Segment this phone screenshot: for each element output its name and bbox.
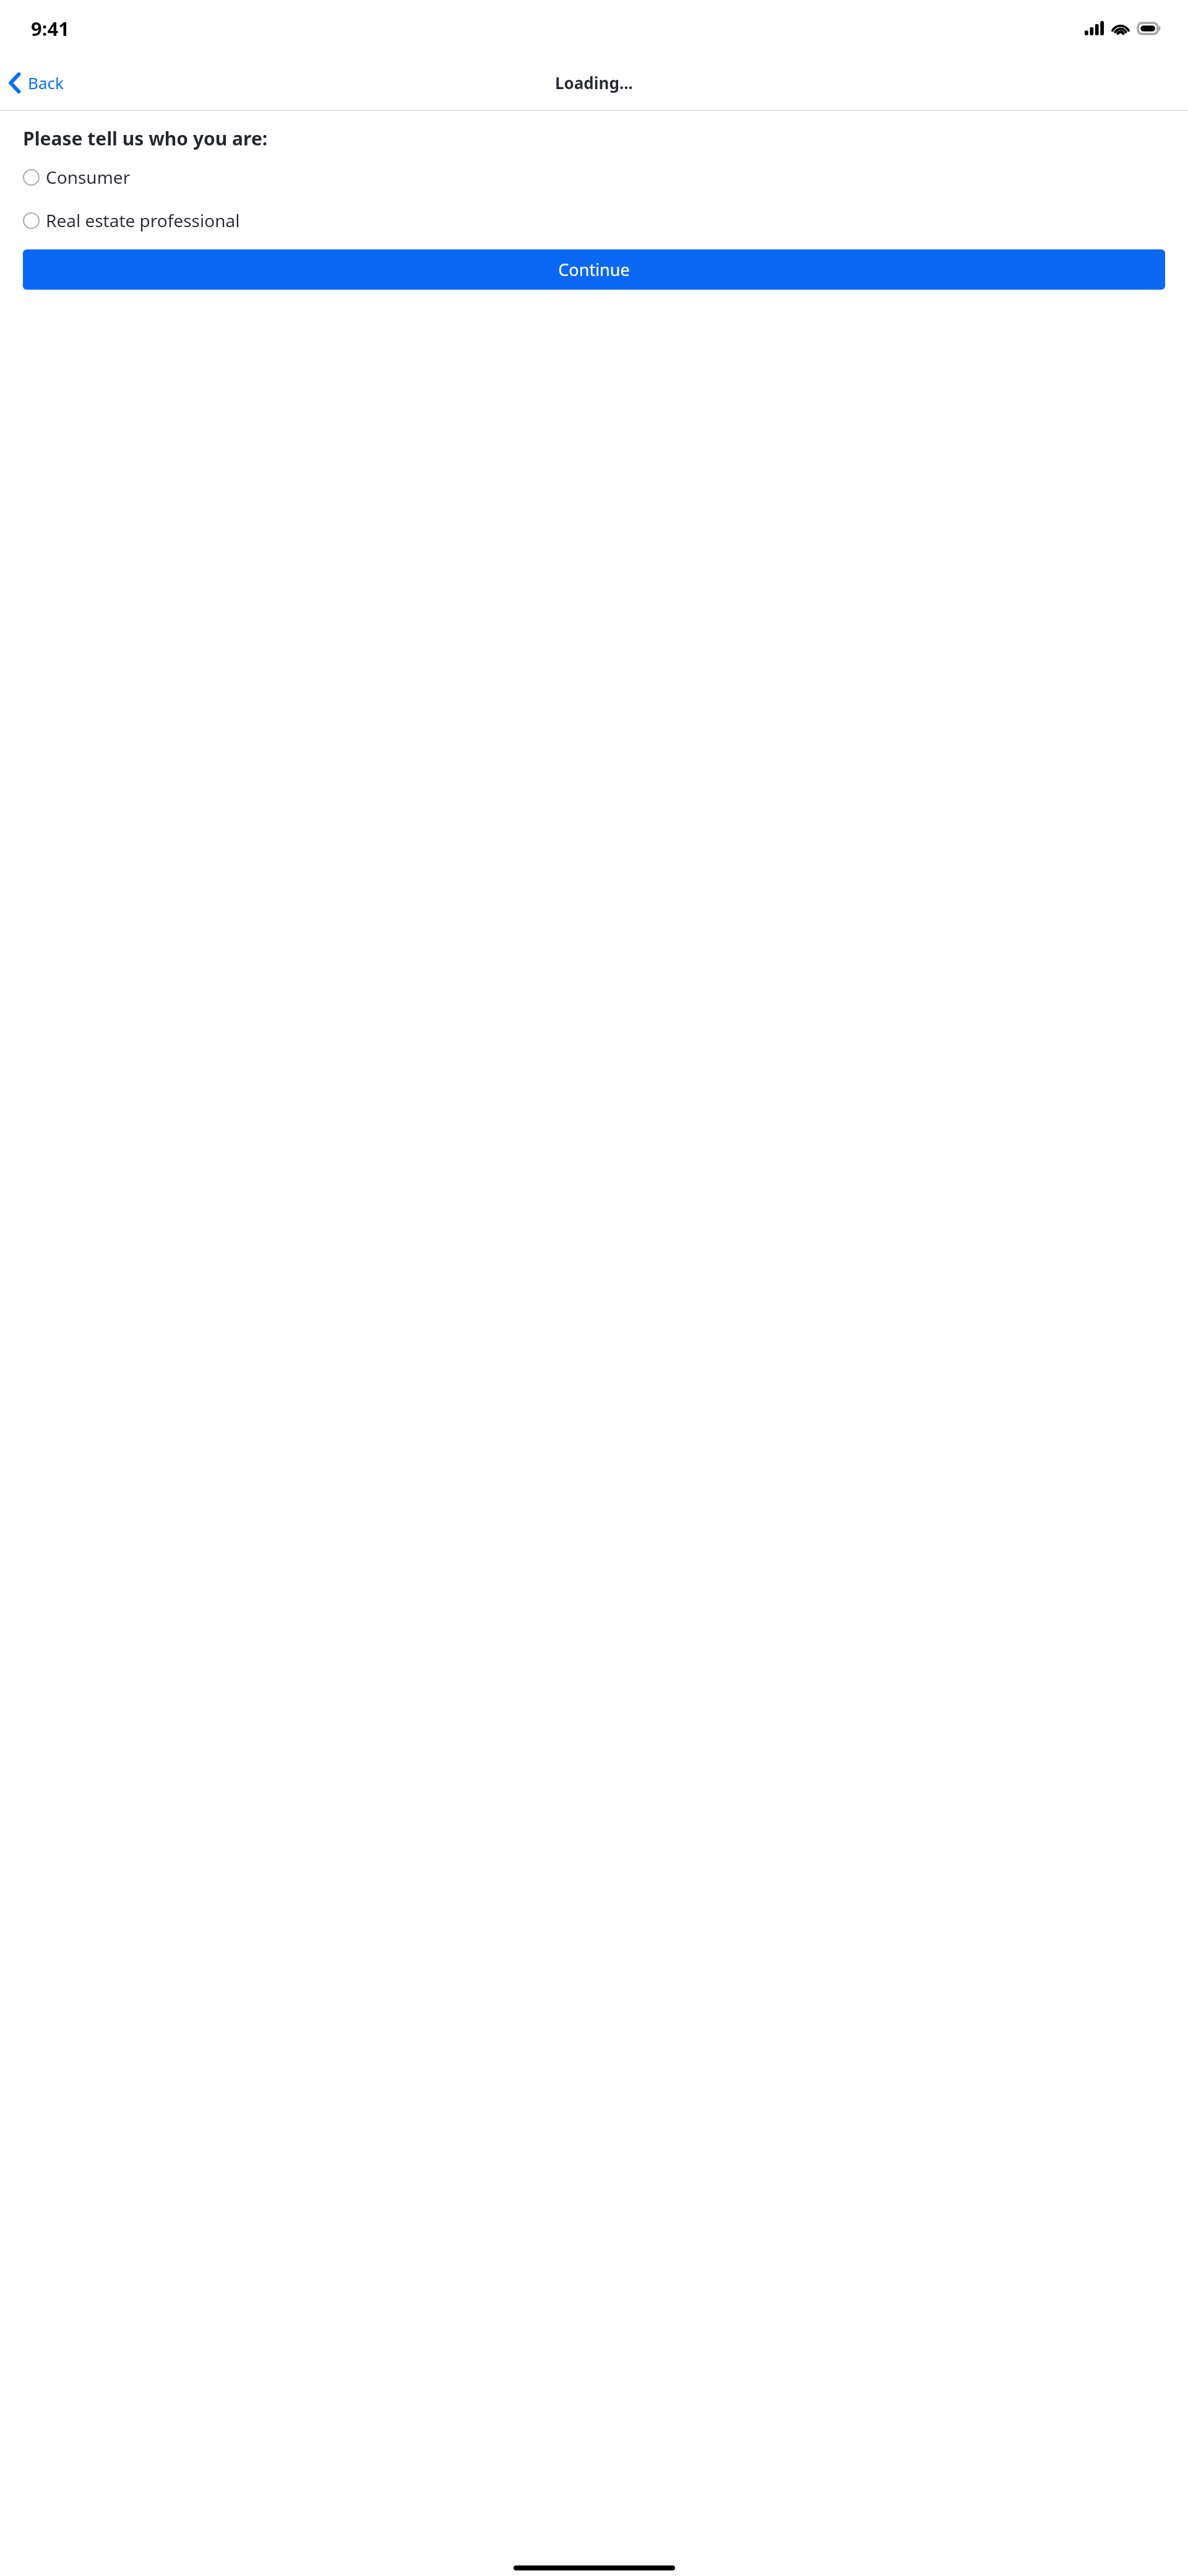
button[interactable]: Back [0,67,74,98]
staticText: Please tell us who you are: [23,126,268,151]
other: Cellular signal [1085,21,1104,35]
staticText: Real estate professional [46,209,240,232]
other: Battery [1137,22,1161,35]
other: Wi-Fi [1111,22,1130,35]
staticText: Continue [558,258,630,281]
staticText: Back [28,72,64,93]
staticText: Loading... [555,72,633,93]
staticText: 9:41 [31,15,69,41]
button[interactable]: Continue [23,249,1165,290]
button[interactable]: Real estate professional [0,205,1188,236]
button[interactable]: Consumer [0,162,1188,192]
staticText: Consumer [46,165,131,189]
